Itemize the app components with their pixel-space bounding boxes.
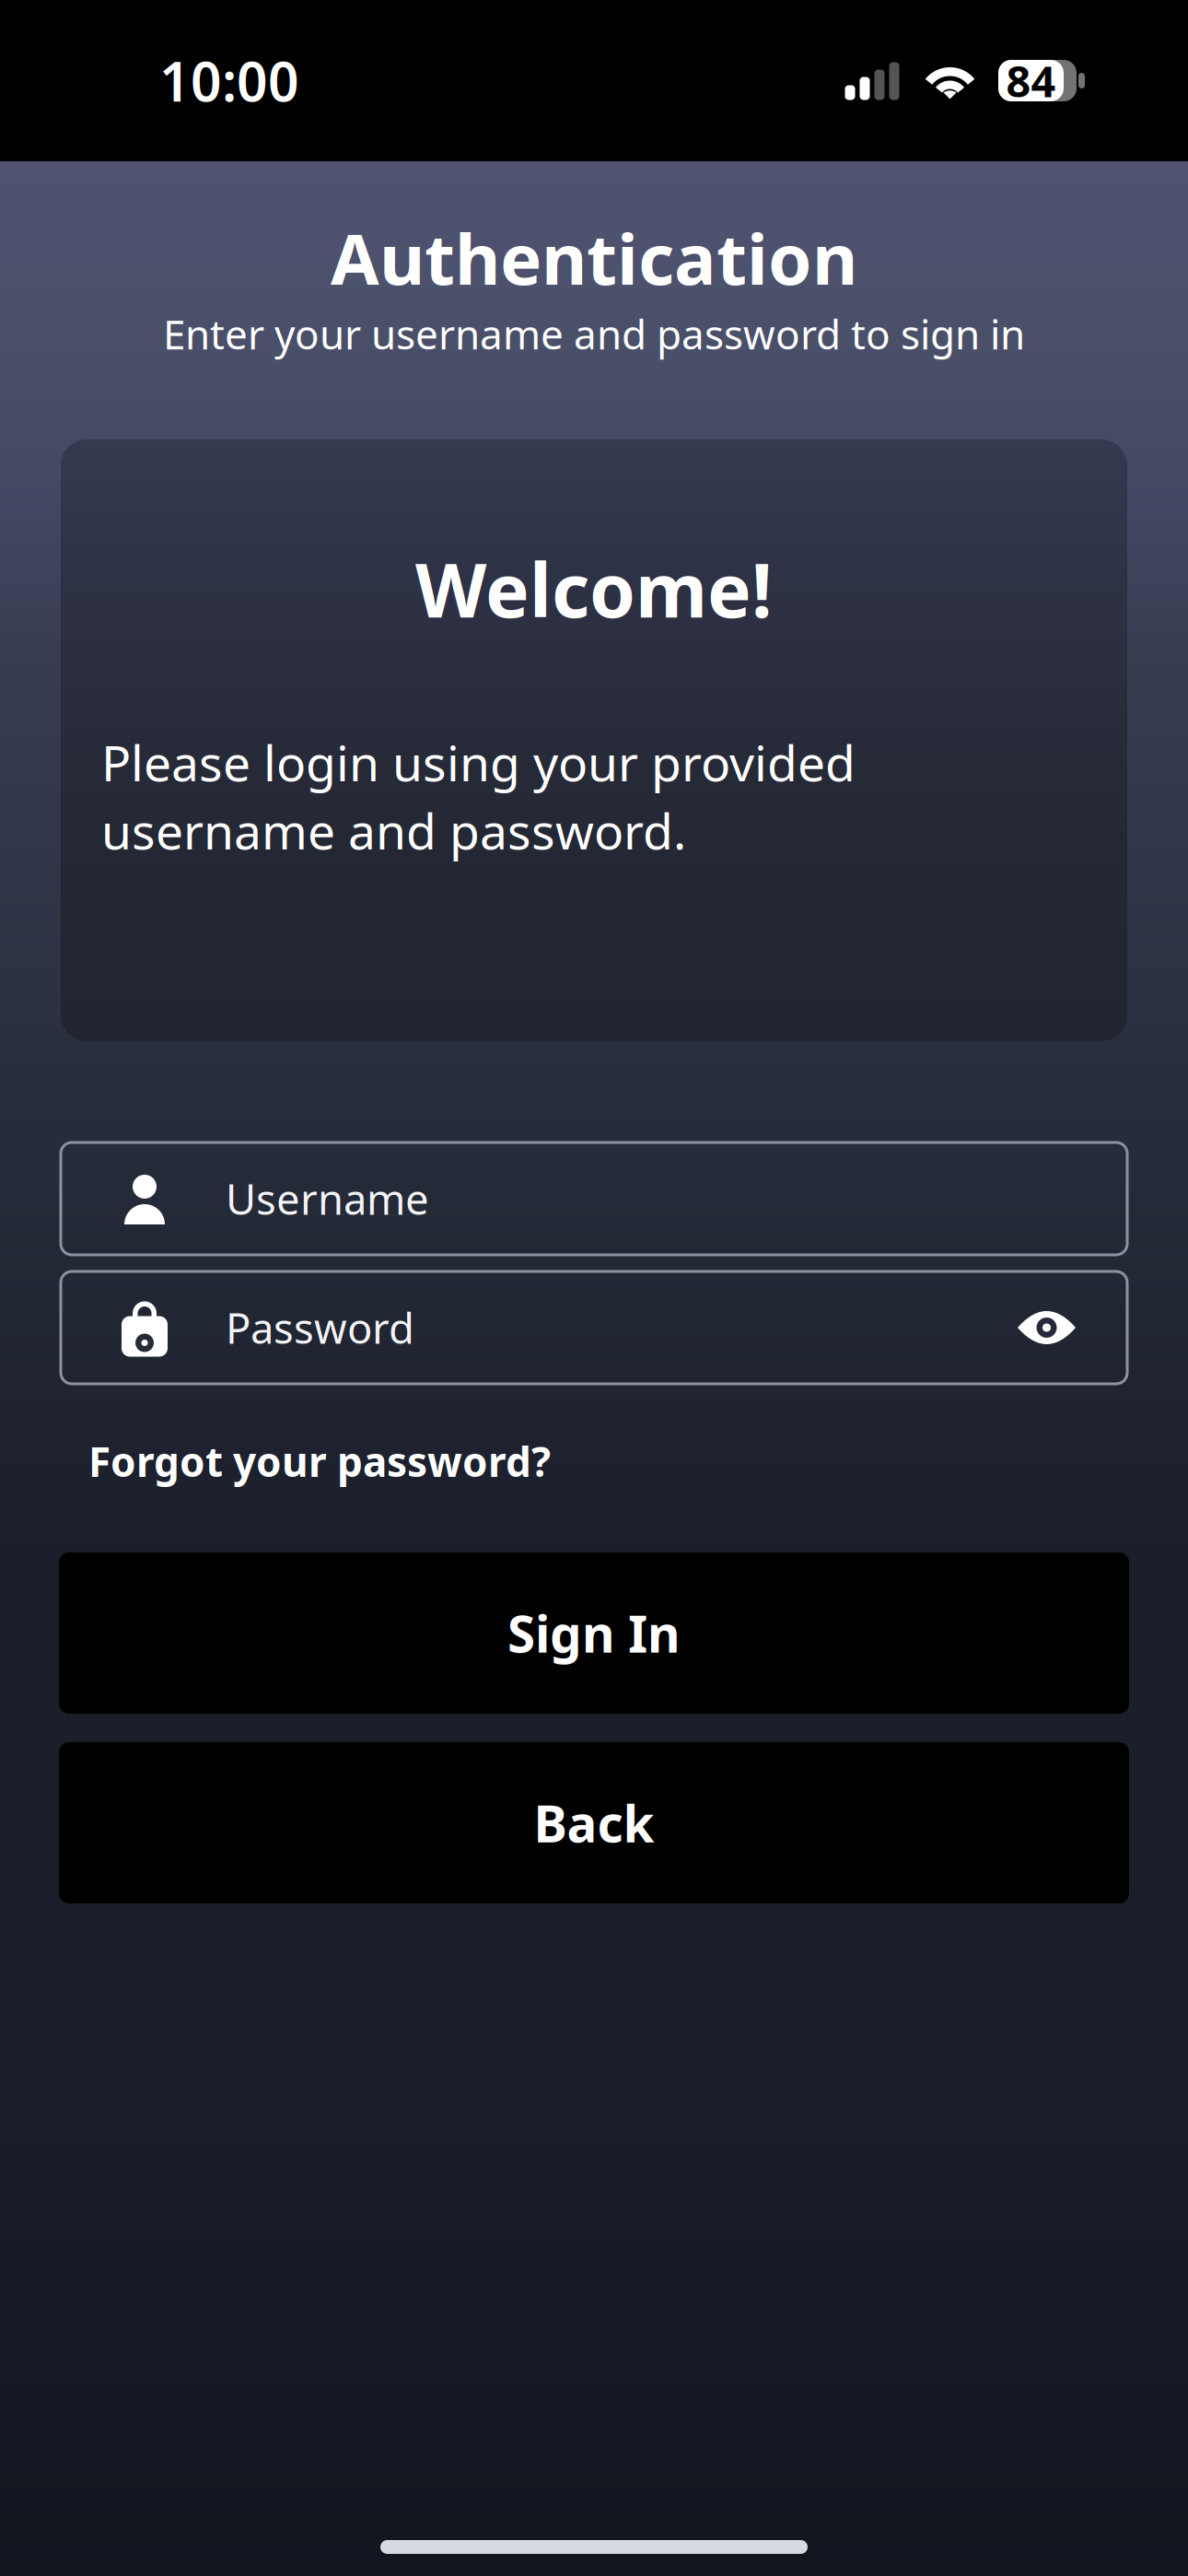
- staticText: Username: [226, 1171, 429, 1226]
- staticText: Sign In: [507, 1600, 681, 1666]
- staticText: Password: [226, 1300, 414, 1355]
- staticText: Forgot your password?: [88, 1434, 551, 1488]
- button[interactable]: Show password: [1018, 1307, 1076, 1348]
- staticText: Back: [534, 1789, 654, 1856]
- staticText: 84: [1006, 52, 1056, 109]
- staticText: Authentication: [331, 211, 857, 275]
- staticText: Please login using your provided usernam…: [101, 730, 856, 863]
- button[interactable]: Sign In: [59, 1552, 1129, 1714]
- button[interactable]: Forgot your password?: [0, 1410, 1188, 1513]
- staticText: 10:00: [159, 45, 299, 116]
- button[interactable]: Back: [59, 1742, 1129, 1903]
- staticText: Welcome!: [415, 540, 773, 608]
- staticText: Enter your username and password to sign…: [163, 307, 1025, 351]
